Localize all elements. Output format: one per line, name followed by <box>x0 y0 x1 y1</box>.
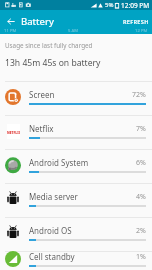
button[interactable]: Media server <box>0 184 152 217</box>
button[interactable]: Android OS <box>0 218 152 251</box>
staticText: 5 AM <box>68 28 78 34</box>
staticText: 5% <box>105 1 114 9</box>
button[interactable]: Cell standby <box>0 252 152 270</box>
staticText: Android OS <box>29 225 136 236</box>
staticText: 7% <box>136 124 146 134</box>
staticText: NETFLIX <box>7 130 20 134</box>
staticText: 13h 45m 45s on battery <box>5 57 101 69</box>
staticText: 4% <box>136 192 146 202</box>
staticText: 2% <box>136 226 146 236</box>
staticText: Netflix <box>29 123 136 134</box>
button[interactable]: REFRESH <box>117 10 152 32</box>
staticText: 12:09 PM <box>121 1 150 10</box>
button[interactable]: Navigate up <box>0 10 21 32</box>
staticText: Cell standby <box>29 251 136 262</box>
button[interactable]: Screen <box>0 82 152 115</box>
staticText: REFRESH <box>123 18 149 26</box>
staticText: Battery <box>21 15 54 28</box>
button[interactable]: NETFLIX <box>0 116 152 149</box>
button[interactable]: Android System <box>0 150 152 183</box>
staticText: Screen <box>29 89 132 100</box>
staticText: 6% <box>136 158 146 168</box>
staticText: Android System <box>29 157 136 168</box>
staticText: Media server <box>29 191 136 202</box>
staticText: 1% <box>136 252 146 262</box>
staticText: 12 PM <box>135 28 148 34</box>
staticText: Usage since last fully charged <box>5 41 93 50</box>
staticText: 11 PM <box>4 28 17 34</box>
staticText: 72% <box>132 90 146 100</box>
